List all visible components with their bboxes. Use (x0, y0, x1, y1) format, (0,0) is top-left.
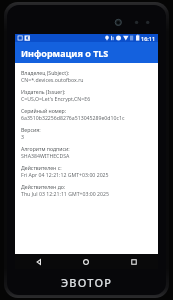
staticText: Thu Jul 03 12:21:11 GMT+03:00 2025 (21, 190, 109, 197)
staticText: Действителен до: (21, 183, 66, 190)
staticText: Владелец (Subject): (21, 69, 70, 76)
staticText: ЭВOTOP (61, 275, 113, 290)
staticText: 6a3510b32256d8276a513045289e0d10c1c (21, 114, 125, 121)
button[interactable]: Home (62, 254, 110, 269)
button[interactable]: Информация о TLS сертификате (15, 42, 158, 63)
staticText: Версия: (21, 126, 41, 133)
staticText: Алгоритм подписи: (21, 145, 70, 152)
button[interactable]: Recent apps (110, 254, 158, 269)
staticText: Fri Apr 04 12:21:12 GMT+03:00 2025 (21, 171, 109, 178)
staticText: 3 (21, 133, 24, 140)
staticText: Информация о TLS сертификате (21, 47, 158, 59)
button[interactable]: Back (15, 254, 62, 269)
staticText: Издатель (Issuer): (21, 88, 66, 95)
staticText: 16:11 (141, 35, 156, 42)
staticText: CN=*.devices.outofbox.ru (21, 76, 84, 83)
staticText: Серийный номер: (21, 107, 67, 114)
staticText: Действителен с: (21, 164, 62, 171)
staticText: SHA384WITHECDSA (21, 152, 70, 159)
staticText: C=US,O=Let's Encrypt,CN=E6 (21, 95, 91, 102)
